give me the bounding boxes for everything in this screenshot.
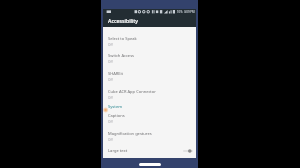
button[interactable]: Switch Access <box>103 48 196 66</box>
button[interactable]: Cube ACR App Connector <box>103 84 196 101</box>
staticText: Captions <box>108 113 125 119</box>
staticText: Off <box>108 120 113 124</box>
staticText: Switch Access <box>108 53 135 59</box>
staticText: 3:09 PM <box>184 10 195 14</box>
button[interactable]: SHAREit <box>103 66 196 84</box>
button[interactable]: Home <box>139 163 161 166</box>
staticText: SHAREit <box>108 71 124 77</box>
staticText: Select to Speak <box>108 36 137 42</box>
staticText: Off <box>108 60 113 64</box>
staticText: Cube ACR App Connector <box>108 89 156 95</box>
staticText: Off <box>108 78 113 82</box>
staticText: Magnification gestures <box>108 131 152 137</box>
button[interactable]: Captions <box>103 109 196 127</box>
staticText: Large text <box>108 148 128 154</box>
staticText: Off <box>108 96 113 100</box>
button[interactable]: Magnification gestures <box>103 127 196 145</box>
other: Large text toggle <box>183 148 193 154</box>
staticText: Off <box>108 138 113 142</box>
staticText: Accessibility <box>108 17 139 24</box>
staticText: Off <box>108 43 113 47</box>
button[interactable]: Select to Speak <box>103 31 196 48</box>
button[interactable]: Large text <box>103 144 196 158</box>
staticText: 10% <box>177 10 183 14</box>
staticText: System <box>108 104 123 110</box>
